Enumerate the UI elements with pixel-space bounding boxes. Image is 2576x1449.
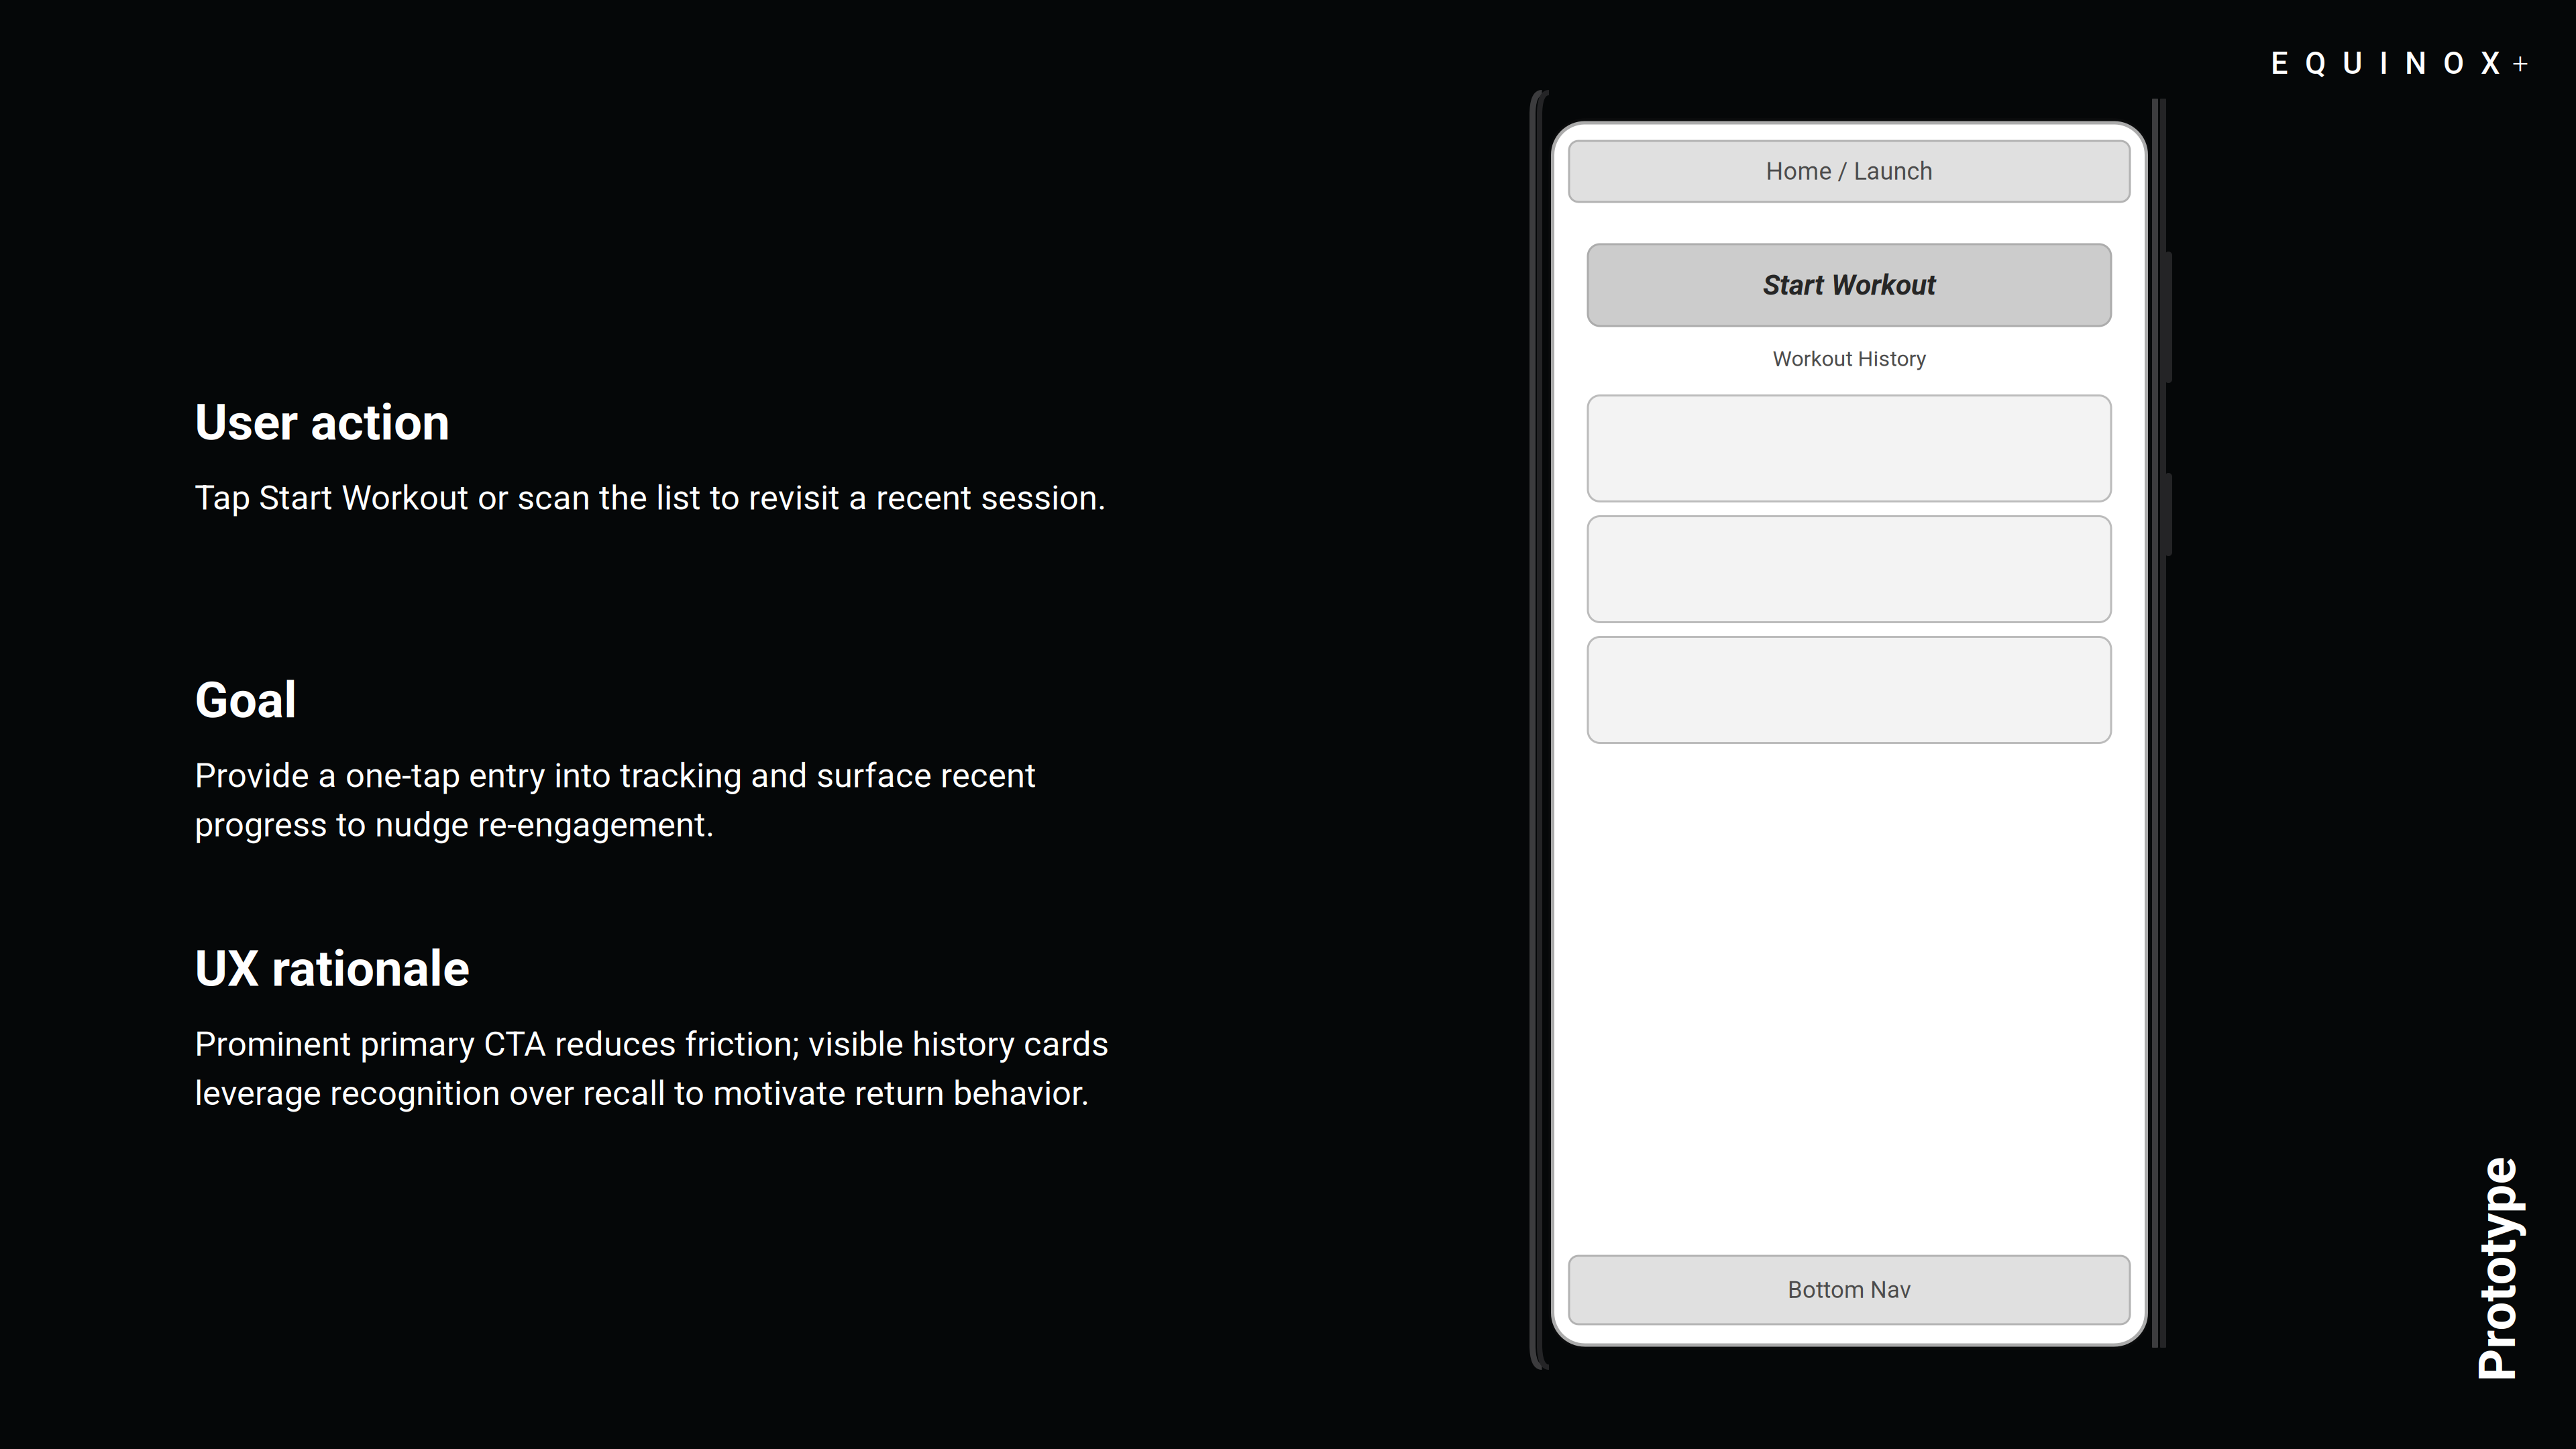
staticText: Prominent primary CTA reduces friction; … bbox=[195, 1024, 1109, 1064]
staticText: EQUINOX bbox=[2271, 46, 2500, 81]
staticText: Tap Start Workout or scan the list to re… bbox=[195, 478, 1106, 518]
staticText: + bbox=[2512, 47, 2528, 80]
button[interactable]: Home / Launch bbox=[1569, 141, 2130, 202]
button[interactable]: Start Workout bbox=[1588, 244, 2111, 326]
button[interactable]: Recent workout session bbox=[1588, 637, 2111, 743]
staticText: Home / Launch bbox=[1766, 157, 1933, 186]
button[interactable]: EQUINOX bbox=[2271, 46, 2528, 81]
staticText: Goal bbox=[195, 671, 297, 729]
staticText: Provide a one-tap entry into tracking an… bbox=[195, 756, 1036, 795]
button[interactable]: Recent workout session bbox=[1588, 395, 2111, 501]
staticText: progress to nudge re-engagement. bbox=[195, 805, 714, 845]
staticText: Bottom Nav bbox=[1788, 1276, 1911, 1304]
staticText: User action bbox=[195, 393, 450, 452]
staticText: leverage recognition over recall to moti… bbox=[195, 1073, 1089, 1113]
staticText: Workout History bbox=[1773, 346, 1926, 371]
staticText: Start Workout bbox=[1763, 268, 1936, 302]
staticText: UX rationale bbox=[195, 939, 470, 998]
staticText: Prototype bbox=[2385, 1239, 2576, 1299]
button[interactable]: Recent workout session bbox=[1588, 516, 2111, 622]
button[interactable]: Bottom Nav bbox=[1569, 1256, 2130, 1324]
